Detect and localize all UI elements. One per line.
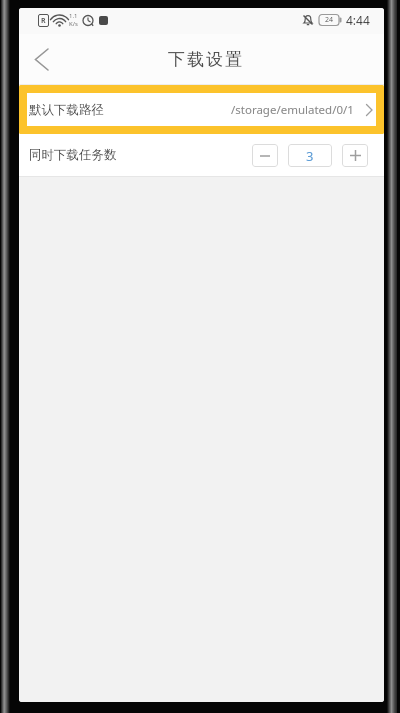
- staticText: 4:44: [346, 12, 370, 28]
- staticText: 默认下载路径: [29, 102, 104, 118]
- staticText: 同时下载任务数: [29, 147, 117, 163]
- button[interactable]: [23, 39, 59, 79]
- button[interactable]: [252, 144, 278, 167]
- staticText: K/s: [69, 20, 78, 28]
- staticText: 24: [325, 15, 334, 25]
- staticText: 下载设置: [167, 49, 243, 70]
- button[interactable]: [342, 144, 368, 167]
- staticText: 1.1: [69, 12, 78, 20]
- staticText: /storage/emulated/0/1: [231, 102, 354, 118]
- button[interactable]: 默认下载路径: [19, 85, 384, 134]
- staticText: R: [41, 16, 46, 26]
- staticText: 3: [306, 147, 314, 165]
